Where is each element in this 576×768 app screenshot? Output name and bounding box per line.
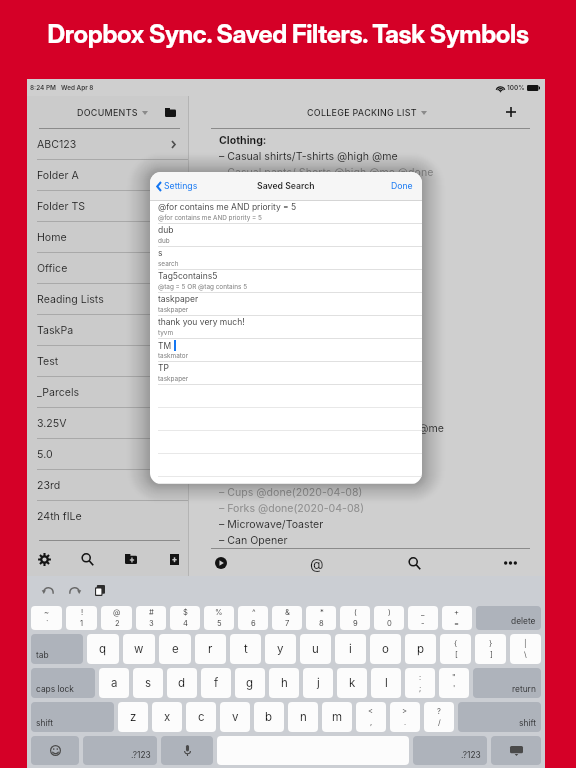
button[interactable]: thank you very much! — [150, 316, 422, 339]
button[interactable]: Dictate — [161, 736, 213, 765]
button[interactable]: q — [87, 634, 119, 664]
button[interactable]: e — [159, 634, 191, 664]
button[interactable]: .?123 — [413, 736, 487, 765]
button[interactable]: ^ — [238, 606, 268, 630]
button[interactable]: u — [300, 634, 331, 664]
button[interactable]: taskpaper — [150, 293, 422, 316]
button[interactable]: % — [204, 606, 234, 630]
button[interactable]: tab — [31, 634, 83, 664]
button[interactable]: New folder — [120, 548, 142, 570]
button[interactable]: TM — [150, 339, 422, 362]
button[interactable]: Undo — [39, 581, 57, 599]
button[interactable]: > — [390, 702, 420, 732]
button[interactable]: { — [440, 634, 471, 664]
button[interactable]: 24th fILe — [27, 501, 188, 532]
button[interactable]: t — [230, 634, 261, 664]
button[interactable]: Tags — [306, 552, 328, 574]
button[interactable]: .?123 — [83, 736, 157, 765]
button[interactable]: _ — [408, 606, 438, 630]
button[interactable]: d — [167, 668, 197, 698]
button[interactable]: | — [510, 634, 541, 664]
button[interactable]: ABC123 — [27, 129, 188, 160]
button[interactable]: Settings — [33, 548, 55, 570]
button[interactable]: ? — [424, 702, 454, 732]
button[interactable]: r — [195, 634, 226, 664]
button[interactable]: Done — [391, 181, 413, 192]
button[interactable]: x — [152, 702, 182, 732]
button[interactable]: f — [201, 668, 231, 698]
button[interactable]: @for contains me AND priority = 5 — [150, 201, 422, 224]
button[interactable]: ) — [374, 606, 404, 630]
staticText: ) — [388, 608, 391, 617]
button[interactable]: New document — [163, 548, 185, 570]
button[interactable]: Folder A — [27, 160, 188, 191]
button[interactable]: i — [335, 634, 366, 664]
button[interactable]: Play — [210, 552, 232, 574]
button[interactable]: s — [133, 668, 163, 698]
staticText: @ — [113, 608, 121, 617]
button[interactable]: h — [269, 668, 299, 698]
button[interactable]: Folder TS — [27, 191, 188, 222]
button[interactable]: Emoji — [31, 736, 79, 765]
button[interactable]: caps lock — [31, 668, 95, 698]
button[interactable]: # — [136, 606, 166, 630]
button[interactable]: c — [186, 702, 216, 732]
button[interactable]: Tag5contains5 — [150, 270, 422, 293]
button[interactable]: Hide keyboard — [491, 736, 541, 765]
button[interactable]: g — [235, 668, 265, 698]
button[interactable]: " — [439, 668, 469, 698]
button[interactable]: Redo — [65, 581, 83, 599]
button[interactable]: Search — [403, 552, 425, 574]
button[interactable]: l — [371, 668, 401, 698]
staticText: t — [244, 642, 248, 656]
staticText: 0 — [387, 619, 392, 628]
button[interactable]: TP — [150, 362, 422, 385]
button[interactable]: 5.0 — [27, 439, 188, 470]
button[interactable]: ( — [340, 606, 370, 630]
button[interactable]: 23rd — [27, 470, 188, 501]
button[interactable]: b — [254, 702, 284, 732]
button[interactable]: shift — [458, 702, 541, 732]
button[interactable]: Settings — [156, 181, 198, 192]
button[interactable]: v — [220, 702, 250, 732]
button[interactable]: Home — [27, 222, 188, 253]
button[interactable]: return — [473, 668, 541, 698]
button[interactable]: s — [150, 247, 422, 270]
button[interactable]: @ — [101, 606, 132, 630]
button[interactable]: < — [356, 702, 386, 732]
button[interactable]: ~ — [31, 606, 62, 630]
button[interactable]: k — [337, 668, 367, 698]
button[interactable]: z — [118, 702, 148, 732]
button[interactable]: Paste — [91, 581, 109, 599]
button[interactable]: } — [475, 634, 506, 664]
button[interactable]: * — [306, 606, 336, 630]
button[interactable]: _Parcels — [27, 377, 188, 408]
button[interactable]: Search — [76, 548, 98, 570]
button[interactable]: j — [303, 668, 333, 698]
button[interactable]: Add — [501, 102, 521, 122]
button[interactable]: o — [370, 634, 401, 664]
button[interactable]: p — [405, 634, 436, 664]
button[interactable]: Folders — [161, 103, 179, 121]
button[interactable]: TaskPa — [27, 315, 188, 346]
button[interactable]: y — [265, 634, 296, 664]
button[interactable]: More — [499, 552, 521, 574]
staticText: shift — [519, 718, 536, 728]
button[interactable]: Test — [27, 346, 188, 377]
button[interactable]: 3.25V — [27, 408, 188, 439]
button[interactable]: ! — [66, 606, 97, 630]
button[interactable]: $ — [170, 606, 200, 630]
button[interactable]: dub — [150, 224, 422, 247]
button[interactable]: : — [405, 668, 435, 698]
button[interactable]: & — [272, 606, 302, 630]
button[interactable]: delete — [476, 606, 541, 630]
button[interactable]: + — [442, 606, 472, 630]
button[interactable]: shift — [31, 702, 114, 732]
button[interactable]: a — [99, 668, 129, 698]
button[interactable]: n — [288, 702, 318, 732]
button[interactable]: Office — [27, 253, 188, 284]
button[interactable]: Reading Lists — [27, 284, 188, 315]
button[interactable]: w — [123, 634, 155, 664]
button[interactable]: m — [322, 702, 352, 732]
